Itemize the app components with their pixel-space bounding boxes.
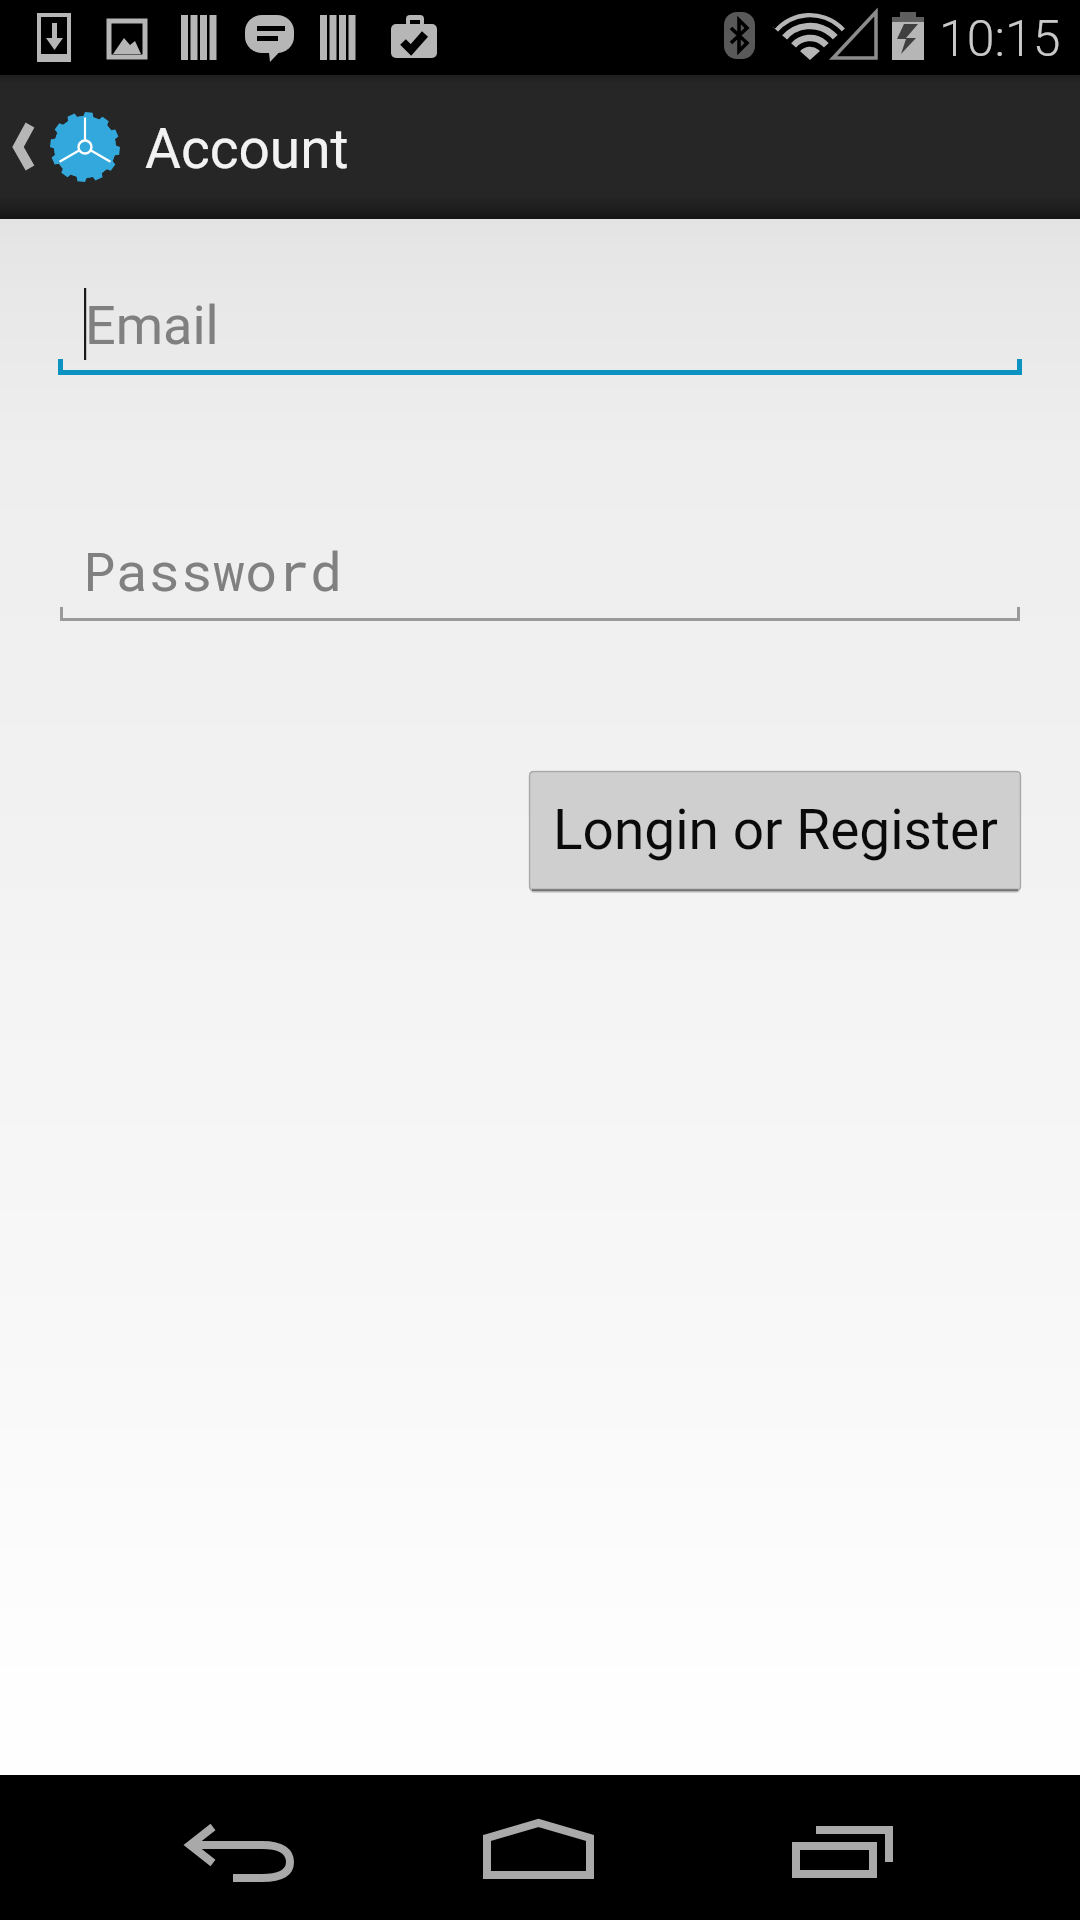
button[interactable]: Home	[360, 1775, 720, 1920]
button[interactable]: Back	[0, 1775, 360, 1920]
button[interactable]: Email	[58, 259, 1022, 375]
button[interactable]: Recent apps	[720, 1775, 1080, 1920]
button[interactable]: Password	[58, 507, 1022, 621]
staticText: Account	[145, 117, 349, 181]
staticText: 10:15	[939, 10, 1061, 69]
button[interactable]: Longin or Register	[529, 771, 1021, 891]
staticText: Password	[83, 534, 343, 605]
staticText: Email	[85, 294, 219, 357]
button[interactable]: Navigate up	[0, 75, 1080, 219]
staticText: Longin or Register	[553, 798, 998, 862]
